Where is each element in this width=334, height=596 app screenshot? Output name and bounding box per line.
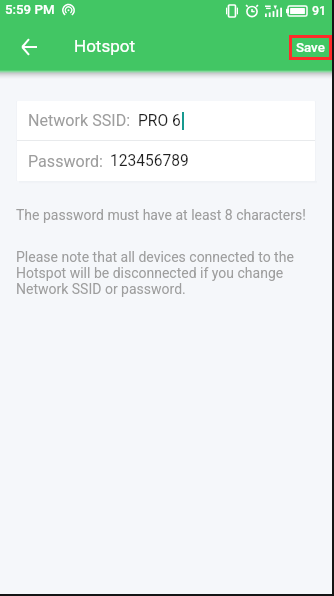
staticText: 123456789 <box>110 152 189 170</box>
staticText: Save <box>296 40 325 56</box>
staticText: 91 <box>312 3 327 18</box>
staticText: 5:59 PM <box>5 2 55 18</box>
staticText: The password must have at least 8 charac… <box>16 207 306 223</box>
staticText: Network SSID: <box>28 111 131 130</box>
staticText: PRO 6 <box>138 112 181 130</box>
button[interactable]: Network SSID: <box>17 101 315 140</box>
staticText: Password: <box>28 152 103 171</box>
staticText: Please note that all devices connected t… <box>16 249 306 297</box>
staticText: Hotspot <box>74 36 135 56</box>
button[interactable]: Back <box>12 30 45 63</box>
button[interactable]: Save <box>287 34 334 62</box>
button[interactable]: Password: <box>17 141 315 181</box>
